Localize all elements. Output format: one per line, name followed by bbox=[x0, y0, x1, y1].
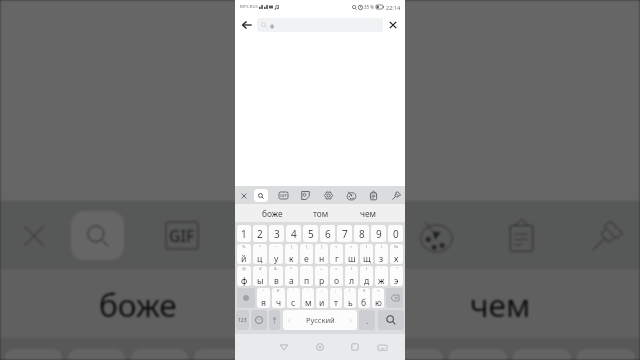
staticText: ! bbox=[349, 288, 351, 294]
button[interactable]: = bbox=[330, 266, 343, 286]
button[interactable]: № bbox=[390, 244, 403, 264]
staticText: 3 bbox=[274, 227, 280, 241]
button[interactable]: 8 bbox=[354, 225, 369, 242]
button[interactable]: Period bbox=[359, 310, 375, 330]
button[interactable]: > bbox=[345, 244, 358, 264]
button[interactable]: Settings bbox=[320, 186, 336, 204]
button[interactable]: 0 bbox=[388, 225, 403, 242]
button[interactable]: 7 bbox=[337, 225, 352, 242]
button[interactable]: { bbox=[300, 244, 313, 264]
button[interactable]: : bbox=[316, 288, 328, 308]
button[interactable]: ] bbox=[315, 244, 328, 264]
button[interactable]: " bbox=[390, 266, 403, 286]
button[interactable]: ₽ bbox=[272, 288, 285, 308]
button[interactable]: чем bbox=[417, 269, 583, 338]
button[interactable]: Shift bbox=[237, 288, 255, 308]
button[interactable]: ~ bbox=[269, 244, 283, 264]
button[interactable]: # bbox=[253, 266, 267, 286]
button[interactable]: ' bbox=[302, 288, 314, 308]
staticText: з bbox=[379, 253, 384, 264]
button[interactable]: Themes bbox=[343, 186, 359, 204]
button[interactable]: том bbox=[299, 204, 343, 222]
button[interactable]: 8 bbox=[449, 349, 507, 360]
button[interactable]: ! bbox=[344, 288, 356, 308]
button[interactable]: 1 bbox=[237, 225, 251, 242]
button[interactable]: Recents bbox=[347, 339, 363, 355]
button[interactable]: GIF bbox=[151, 201, 211, 269]
button[interactable]: ; bbox=[330, 288, 342, 308]
button[interactable]: ) bbox=[375, 244, 388, 264]
staticText: 0 bbox=[595, 354, 617, 360]
button[interactable]: $ bbox=[358, 288, 370, 308]
button[interactable]: боже bbox=[55, 269, 221, 338]
button[interactable]: < bbox=[372, 288, 384, 308]
button[interactable]: ` bbox=[287, 288, 300, 308]
button[interactable]: * bbox=[285, 266, 298, 286]
button[interactable]: Settings bbox=[320, 201, 380, 269]
button[interactable]: GIF bbox=[275, 186, 291, 204]
button[interactable]: Emoji bbox=[251, 310, 267, 330]
button[interactable]: Search bbox=[253, 186, 269, 204]
button[interactable]: Themes bbox=[406, 201, 466, 269]
button[interactable]: ' bbox=[375, 266, 388, 286]
button[interactable]: ф bbox=[257, 18, 383, 32]
button[interactable]: 4 bbox=[194, 349, 251, 360]
button[interactable]: % bbox=[237, 244, 251, 264]
button[interactable]: 5 bbox=[303, 225, 318, 242]
button[interactable]: 2 bbox=[253, 225, 267, 242]
staticText: < bbox=[377, 288, 380, 294]
staticText: & bbox=[274, 266, 278, 272]
button[interactable]: чем bbox=[346, 204, 390, 222]
button[interactable]: Numbers bbox=[236, 310, 249, 330]
button[interactable]: Back bbox=[276, 339, 292, 355]
button[interactable]: ^ bbox=[253, 244, 267, 264]
staticText: ц bbox=[257, 253, 263, 264]
button[interactable]: Stickers bbox=[235, 201, 295, 269]
button[interactable]: боже bbox=[250, 204, 294, 222]
button[interactable]: Clipboard bbox=[491, 201, 551, 269]
button[interactable]: том bbox=[239, 269, 405, 338]
button[interactable]: & bbox=[269, 266, 283, 286]
button[interactable]: 3 bbox=[269, 225, 284, 242]
button[interactable]: 1 bbox=[5, 349, 62, 360]
button[interactable]: Русский bbox=[283, 310, 357, 330]
button[interactable]: - bbox=[300, 266, 313, 286]
staticText: # bbox=[259, 266, 262, 272]
staticText: х bbox=[394, 253, 399, 264]
button[interactable]: Clear bbox=[385, 17, 401, 33]
button[interactable]: 6 bbox=[320, 225, 335, 242]
button[interactable]: Pin bbox=[388, 186, 404, 204]
button[interactable]: Backspace bbox=[386, 288, 403, 308]
button[interactable]: Voice input bbox=[269, 310, 280, 330]
button[interactable]: Stickers bbox=[297, 186, 313, 204]
button[interactable]: Search bbox=[378, 310, 404, 330]
button[interactable]: Search bbox=[67, 201, 127, 269]
button[interactable]: 0 bbox=[577, 349, 635, 360]
button[interactable]: Back bbox=[239, 17, 255, 33]
button[interactable]: Home bbox=[312, 339, 328, 355]
button[interactable]: < bbox=[330, 244, 343, 264]
button[interactable]: 7 bbox=[385, 349, 443, 360]
button[interactable]: 6 bbox=[321, 349, 379, 360]
button[interactable]: Switch keyboard bbox=[374, 339, 390, 355]
button[interactable]: 2 bbox=[68, 349, 125, 360]
button[interactable]: ( bbox=[345, 266, 358, 286]
button[interactable]: 4 bbox=[286, 225, 301, 242]
button[interactable]: 9 bbox=[371, 225, 386, 242]
button[interactable]: @ bbox=[237, 266, 251, 286]
button[interactable]: Close bbox=[236, 186, 252, 204]
button[interactable]: ) bbox=[360, 266, 373, 286]
button[interactable]: 3 bbox=[131, 349, 188, 360]
button[interactable]: [ bbox=[285, 244, 298, 264]
button[interactable]: Clipboard bbox=[365, 186, 381, 204]
button[interactable]: 9 bbox=[513, 349, 571, 360]
button[interactable]: ~ bbox=[257, 288, 270, 308]
staticText: том bbox=[293, 283, 351, 326]
button[interactable]: + bbox=[315, 266, 328, 286]
staticText: : bbox=[321, 288, 323, 294]
button[interactable]: ( bbox=[360, 244, 373, 264]
staticText: ф bbox=[270, 22, 275, 29]
